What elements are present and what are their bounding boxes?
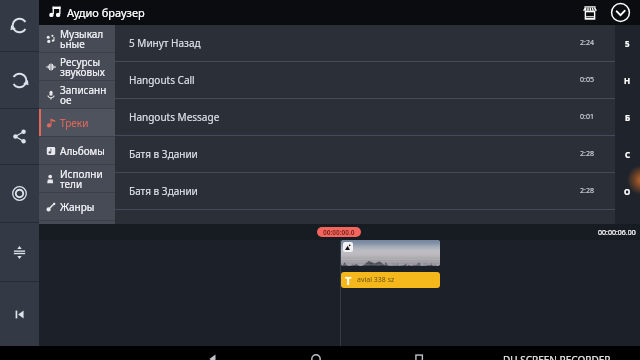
staticText: T <box>345 273 352 288</box>
button[interactable]: Музыкальные <box>39 25 115 52</box>
staticText: 0:05 <box>580 75 594 85</box>
staticText: 00:00:06.00 <box>598 228 636 238</box>
button[interactable]: С <box>615 136 640 173</box>
button[interactable]: О <box>615 173 640 210</box>
staticText: Ресурсы звуковых <box>60 55 107 79</box>
staticText: С <box>625 149 631 160</box>
button[interactable]: Батя в Здании <box>115 136 615 172</box>
staticText: 5 Минут Назад <box>129 36 201 50</box>
button[interactable]: 5 <box>615 25 640 62</box>
staticText: Б <box>625 112 631 123</box>
staticText: Исполнители <box>60 167 107 191</box>
staticText: Записанное <box>60 83 107 107</box>
button[interactable]: Share <box>0 109 39 164</box>
button[interactable]: Жанры <box>39 193 115 220</box>
staticText: Батя в Здании <box>129 147 198 161</box>
staticText: Hangouts Call <box>129 73 195 87</box>
button[interactable]: Back <box>206 352 220 360</box>
button[interactable]: Альбомы <box>39 137 115 164</box>
staticText: Батя в Здании <box>129 184 198 198</box>
staticText: О <box>624 186 631 197</box>
staticText: Треки <box>60 116 107 130</box>
button[interactable]: 5 Минут Назад <box>115 25 615 61</box>
staticText: Н <box>624 75 631 86</box>
staticText: Аудио браузер <box>67 5 145 20</box>
staticText: 2:28 <box>580 149 594 159</box>
button[interactable]: T <box>341 272 440 288</box>
button[interactable]: Redo <box>0 52 39 108</box>
staticText: Жанры <box>60 200 107 214</box>
button[interactable]: Done <box>610 2 631 23</box>
staticText: 5 <box>625 38 630 49</box>
button[interactable]: Исполнители <box>39 165 115 192</box>
staticText: 2:24 <box>580 38 594 48</box>
button[interactable]: Ресурсы звуковых <box>39 53 115 80</box>
staticText: Альбомы <box>60 144 107 158</box>
button[interactable]: Батя в Здании <box>115 173 615 209</box>
button[interactable] <box>341 240 440 266</box>
button[interactable]: Б <box>615 99 640 136</box>
staticText: DU SCREEN RECORDER <box>503 353 611 360</box>
button[interactable]: Capture <box>0 165 39 222</box>
staticText: 2:28 <box>580 186 594 196</box>
staticText: 00:00:00.0 <box>323 228 355 237</box>
button[interactable]: Треки <box>39 109 115 136</box>
button[interactable]: Hangouts Call <box>115 62 615 98</box>
button[interactable]: Hangouts Message <box>115 99 615 135</box>
staticText: Музыкальные <box>60 27 107 51</box>
button[interactable]: Н <box>615 62 640 99</box>
button[interactable]: Skip to start <box>0 282 39 346</box>
staticText: Hangouts Message <box>129 110 220 124</box>
button[interactable]: Asset store <box>580 3 600 23</box>
button[interactable]: Home <box>309 352 323 360</box>
staticText: avial 338 sz <box>357 275 395 285</box>
button[interactable]: Recents <box>412 352 426 360</box>
button[interactable]: Layers <box>0 223 39 281</box>
staticText: 0:01 <box>580 112 594 122</box>
button[interactable]: Undo <box>0 0 39 51</box>
button[interactable]: Записанное <box>39 81 115 108</box>
